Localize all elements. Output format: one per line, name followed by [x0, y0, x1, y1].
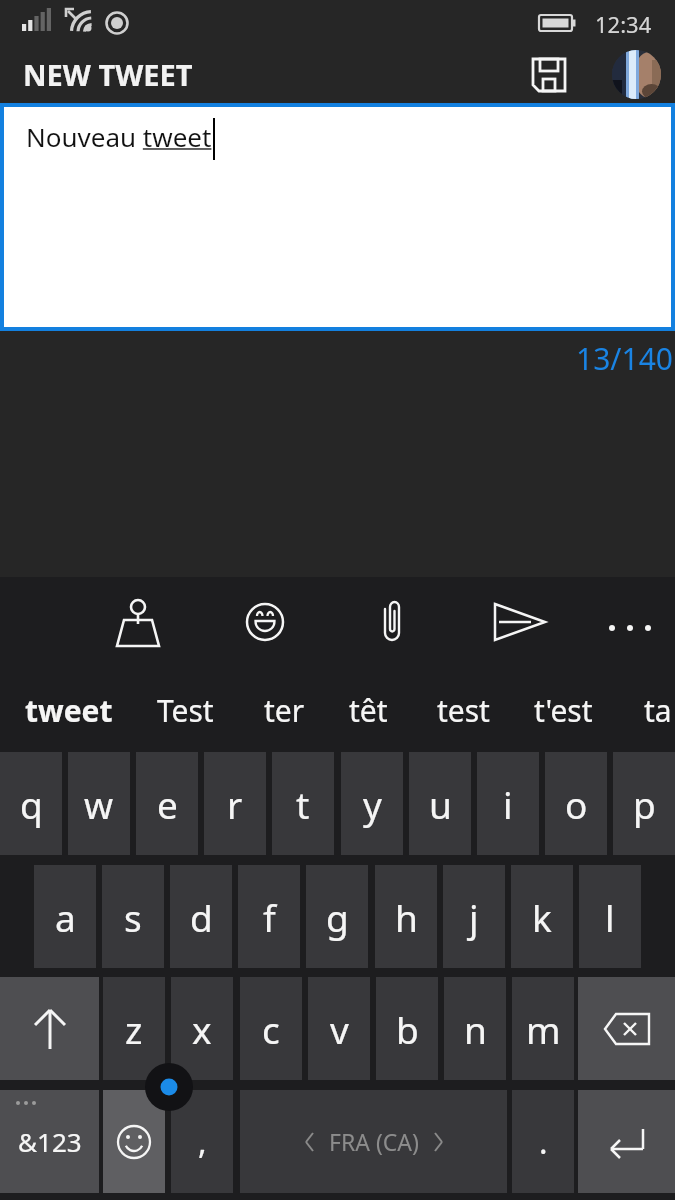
staticText: j	[469, 892, 479, 942]
staticText: f	[263, 892, 276, 942]
button[interactable]: u	[409, 752, 471, 855]
button[interactable]	[0, 977, 99, 1080]
button[interactable]: FRA (CA)	[240, 1090, 507, 1193]
staticText: ,	[198, 1120, 207, 1164]
staticText: v	[330, 1004, 349, 1054]
staticText: r	[227, 779, 243, 829]
staticText: p	[633, 779, 656, 829]
staticText: têt	[349, 690, 388, 731]
staticText: FRA (CA)	[329, 1126, 419, 1157]
button[interactable]: q	[0, 752, 62, 855]
button[interactable]	[486, 588, 554, 656]
button[interactable]: .	[512, 1090, 574, 1193]
button[interactable]: w	[68, 752, 130, 855]
staticText: s	[124, 892, 142, 942]
button[interactable]	[104, 588, 172, 656]
staticText: t	[296, 779, 310, 829]
staticText: q	[20, 779, 43, 829]
staticText: .	[539, 1120, 548, 1164]
staticText: 12:34	[595, 9, 652, 39]
button[interactable]: t	[272, 752, 334, 855]
staticText: y	[363, 779, 382, 829]
button[interactable]: g	[306, 865, 368, 968]
staticText: ter	[264, 690, 305, 731]
staticText: b	[396, 1004, 419, 1054]
staticText: g	[326, 892, 349, 942]
button[interactable]: d	[170, 865, 232, 968]
button[interactable]: v	[308, 977, 370, 1080]
staticText: NEW TWEET	[23, 55, 193, 94]
button[interactable]: s	[102, 865, 164, 968]
staticText: k	[532, 892, 552, 942]
staticText: h	[395, 892, 418, 942]
button[interactable]: a	[34, 865, 96, 968]
button[interactable]	[578, 1090, 675, 1193]
staticText: tweet	[25, 690, 113, 731]
button[interactable]: x	[171, 977, 233, 1080]
staticText: i	[503, 779, 513, 829]
staticText: w	[84, 779, 114, 829]
staticText: Test	[157, 690, 214, 731]
button[interactable]: Nouveau tweet	[4, 107, 671, 327]
staticText: x	[192, 1004, 212, 1054]
button[interactable]: c	[240, 977, 302, 1080]
staticText: z	[125, 1004, 143, 1054]
staticText: c	[262, 1004, 280, 1054]
button[interactable]: i	[477, 752, 539, 855]
button[interactable]: n	[444, 977, 506, 1080]
staticText: t'est	[534, 690, 593, 731]
staticText: ta	[644, 690, 672, 731]
staticText: d	[190, 892, 213, 942]
staticText: o	[565, 779, 588, 829]
staticText: a	[55, 892, 76, 942]
button[interactable]: f	[238, 865, 300, 968]
button[interactable]: p	[613, 752, 675, 855]
staticText: Nouveau tweet	[26, 119, 212, 154]
button[interactable]	[596, 594, 664, 662]
staticText: l	[605, 892, 615, 942]
button[interactable]: e	[136, 752, 198, 855]
staticText: u	[429, 779, 452, 829]
button[interactable]: ,	[171, 1090, 233, 1193]
button[interactable]	[612, 50, 661, 99]
staticText: n	[464, 1004, 487, 1054]
button[interactable]: b	[376, 977, 438, 1080]
button[interactable]	[578, 977, 675, 1080]
button[interactable]	[231, 588, 299, 656]
button[interactable]: &123	[0, 1090, 99, 1193]
button[interactable]: y	[341, 752, 403, 855]
button[interactable]	[103, 1090, 165, 1193]
button[interactable]: l	[579, 865, 641, 968]
button[interactable]: h	[375, 865, 437, 968]
button[interactable]: k	[511, 865, 573, 968]
button[interactable]: j	[443, 865, 505, 968]
button[interactable]: o	[545, 752, 607, 855]
staticText: m	[526, 1004, 561, 1054]
button[interactable]: m	[512, 977, 574, 1080]
staticText: e	[157, 779, 178, 829]
staticText: &123	[18, 1124, 82, 1159]
button[interactable]	[526, 52, 572, 98]
button[interactable]: r	[204, 752, 266, 855]
button[interactable]: z	[103, 977, 165, 1080]
staticText: 13/140	[576, 338, 673, 378]
staticText: test	[437, 690, 490, 731]
button[interactable]	[358, 588, 426, 656]
